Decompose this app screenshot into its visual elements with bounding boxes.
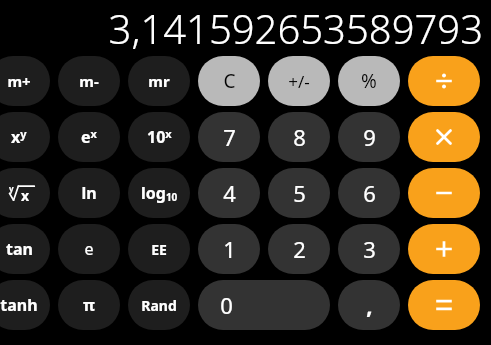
staticText: e: [84, 238, 94, 260]
button[interactable]: EE: [128, 224, 190, 274]
staticText: C: [223, 68, 236, 94]
button[interactable]: Multiply: [408, 112, 480, 162]
button[interactable]: ten to the power x: [128, 112, 190, 162]
button[interactable]: 8: [268, 112, 330, 162]
button[interactable]: 6: [338, 168, 400, 218]
button[interactable]: Minus: [408, 168, 480, 218]
staticText: ,: [366, 290, 373, 320]
staticText: 6: [363, 178, 376, 208]
button[interactable]: e constant: [58, 224, 120, 274]
staticText: %: [361, 68, 377, 94]
button[interactable]: Percent: [338, 56, 400, 106]
staticText: π: [83, 294, 95, 316]
button[interactable]: Comma: [338, 280, 400, 330]
staticText: 7: [223, 122, 236, 152]
button[interactable]: natural log: [58, 168, 120, 218]
button[interactable]: m minus: [58, 56, 120, 106]
button[interactable]: Plus minus: [268, 56, 330, 106]
button[interactable]: memory recall: [128, 56, 190, 106]
button[interactable]: hyperbolic tangent: [0, 280, 50, 330]
button[interactable]: Plus: [408, 224, 480, 274]
staticText: 3: [363, 234, 376, 264]
button[interactable]: y-th root of x: [0, 168, 50, 218]
staticText: 10x: [147, 126, 172, 148]
button[interactable]: Clear: [198, 56, 260, 106]
staticText: 9: [363, 122, 376, 152]
staticText: tan: [6, 238, 33, 260]
staticText: +/-: [288, 70, 310, 93]
button[interactable]: 0: [198, 280, 330, 330]
staticText: Rand: [141, 296, 177, 315]
staticText: m-: [79, 71, 99, 91]
button[interactable]: Divide: [408, 56, 480, 106]
button[interactable]: x to the power y: [0, 112, 50, 162]
staticText: tanh: [0, 294, 38, 316]
staticText: 0: [220, 290, 233, 320]
button[interactable]: Equals: [408, 280, 480, 330]
staticText: ln: [81, 182, 97, 204]
button[interactable]: pi: [58, 280, 120, 330]
staticText: xy: [11, 126, 27, 148]
staticText: 3,141592653589793: [108, 1, 483, 55]
staticText: 8: [293, 122, 306, 152]
button[interactable]: e to the power x: [58, 112, 120, 162]
staticText: 1: [223, 234, 236, 264]
staticText: mr: [148, 71, 170, 91]
button[interactable]: Random: [128, 280, 190, 330]
staticText: 5: [293, 178, 306, 208]
staticText: x: [21, 186, 30, 205]
staticText: ex: [81, 126, 97, 148]
staticText: log10: [141, 182, 178, 204]
button[interactable]: tangent: [0, 224, 50, 274]
button[interactable]: 7: [198, 112, 260, 162]
button[interactable]: 2: [268, 224, 330, 274]
button[interactable]: log base ten: [128, 168, 190, 218]
button[interactable]: 3: [338, 224, 400, 274]
button[interactable]: 4: [198, 168, 260, 218]
staticText: m+: [7, 71, 31, 91]
button[interactable]: 5: [268, 168, 330, 218]
staticText: 4: [223, 178, 236, 208]
button[interactable]: 1: [198, 224, 260, 274]
button[interactable]: 9: [338, 112, 400, 162]
staticText: y: [9, 183, 14, 194]
staticText: 2: [293, 234, 306, 264]
staticText: EE: [151, 240, 167, 259]
button[interactable]: m plus: [0, 56, 50, 106]
